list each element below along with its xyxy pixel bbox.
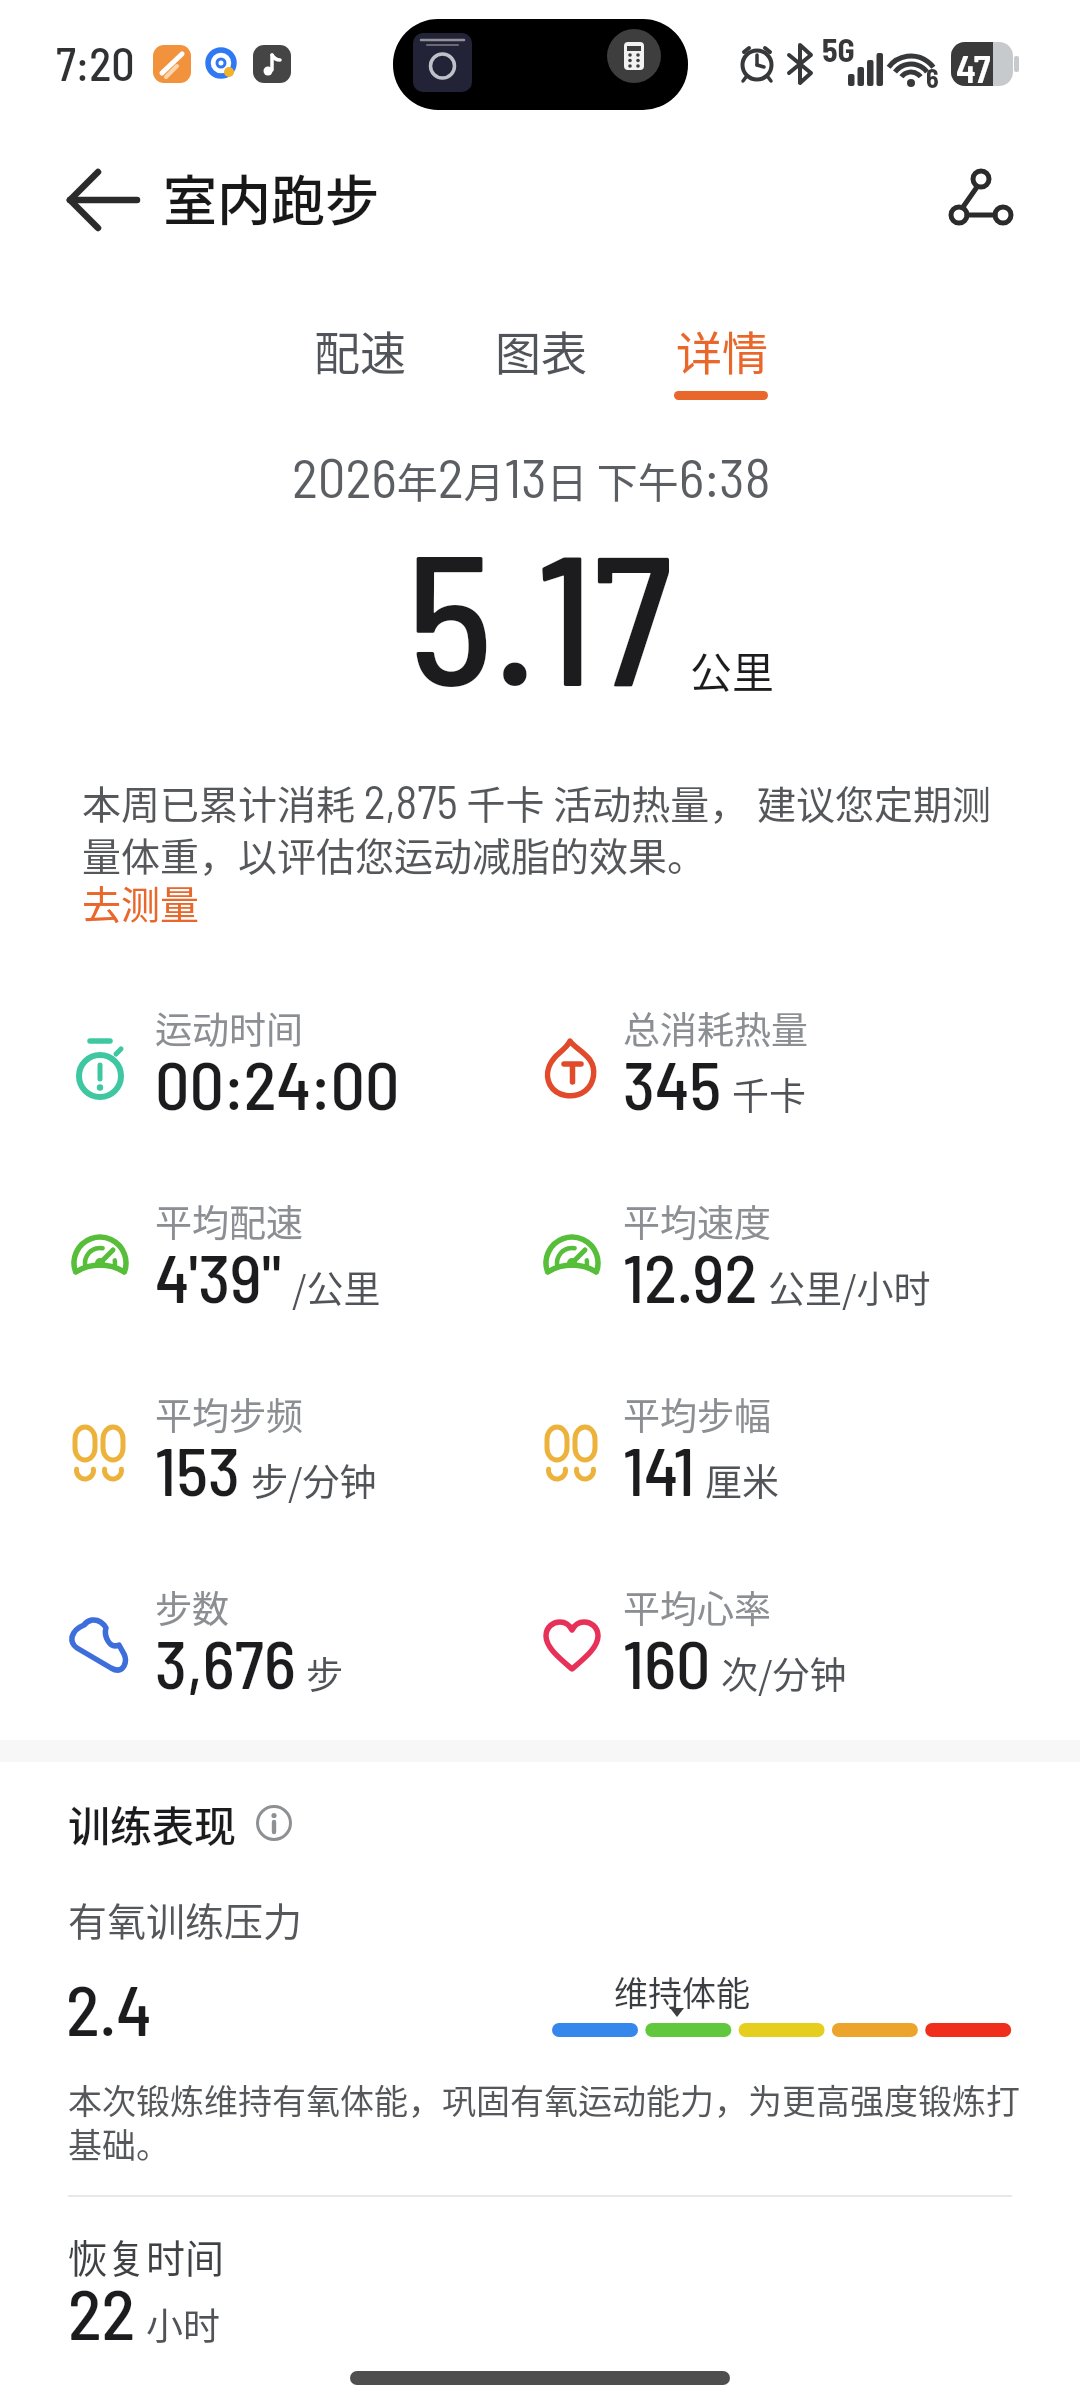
staticText: 步 (306, 1646, 343, 1700)
staticText: 总消耗热量 (623, 1001, 808, 1055)
staticText: 本次锻炼维持有氧体能，巩固有氧运动能力，为更高强度锻炼打 基础。 (68, 2075, 1048, 2168)
staticText: 有氧训练压力 (68, 1891, 303, 1947)
staticText: 6 (926, 62, 939, 93)
button[interactable] (938, 155, 1028, 245)
staticText: 平均心率 (623, 1580, 771, 1634)
staticText: 本周已累计消耗 2,875 千卡 活动热量， 建议您定期测 量体重，以评估您运动… (82, 773, 1042, 882)
staticText: 2.4 (66, 1966, 152, 2050)
button[interactable]: 去测量 (82, 874, 200, 930)
staticText: 室内跑步 (163, 158, 379, 236)
staticText: 160 (623, 1621, 711, 1703)
staticText: 运动时间 (155, 1001, 303, 1055)
staticText: 去测量 (82, 874, 200, 930)
staticText: 千卡 (732, 1067, 806, 1121)
staticText: 153 (155, 1428, 241, 1510)
staticText: 4'39" (155, 1235, 282, 1317)
staticText: 维持体能 (614, 1967, 750, 2016)
staticText: 345 (623, 1042, 722, 1124)
staticText: 平均步幅 (623, 1387, 771, 1441)
staticText: 厘米 (705, 1453, 779, 1507)
staticText: 步数 (155, 1580, 229, 1634)
button[interactable] (50, 170, 160, 230)
staticText: 47 (956, 45, 991, 86)
staticText: 详情 (676, 317, 768, 384)
button[interactable]: 图表 (481, 315, 601, 385)
staticText: 3,676 (155, 1621, 296, 1703)
staticText: 12.92 (623, 1235, 758, 1317)
staticText: 步/分钟 (251, 1453, 377, 1507)
staticText: 5.17 (407, 503, 673, 723)
staticText: 平均配速 (155, 1194, 303, 1248)
staticText: 00:24:00 (155, 1042, 400, 1124)
staticText: 5G (822, 30, 855, 68)
staticText: 图表 (495, 317, 587, 384)
staticText: 141 (623, 1428, 695, 1510)
staticText: 2026年2月13日 下午6:38 (292, 443, 771, 510)
staticText: 22 (68, 2270, 136, 2354)
staticText: 恢复时间 (68, 2228, 225, 2284)
staticText: 7:20 (56, 35, 135, 90)
staticText: 平均步频 (155, 1387, 303, 1441)
button[interactable]: 配速 (300, 315, 420, 385)
staticText: 配速 (314, 317, 406, 384)
staticText: 次/分钟 (721, 1646, 847, 1700)
staticText: 小时 (146, 2297, 220, 2351)
staticText: /公里 (292, 1260, 381, 1314)
staticText: 公里/小时 (768, 1260, 931, 1314)
staticText: 公里 (690, 639, 775, 700)
staticText: 平均速度 (623, 1194, 771, 1248)
button[interactable] (252, 1801, 296, 1845)
button[interactable]: 详情 (662, 315, 782, 385)
staticText: 训练表现 (68, 1793, 237, 1854)
